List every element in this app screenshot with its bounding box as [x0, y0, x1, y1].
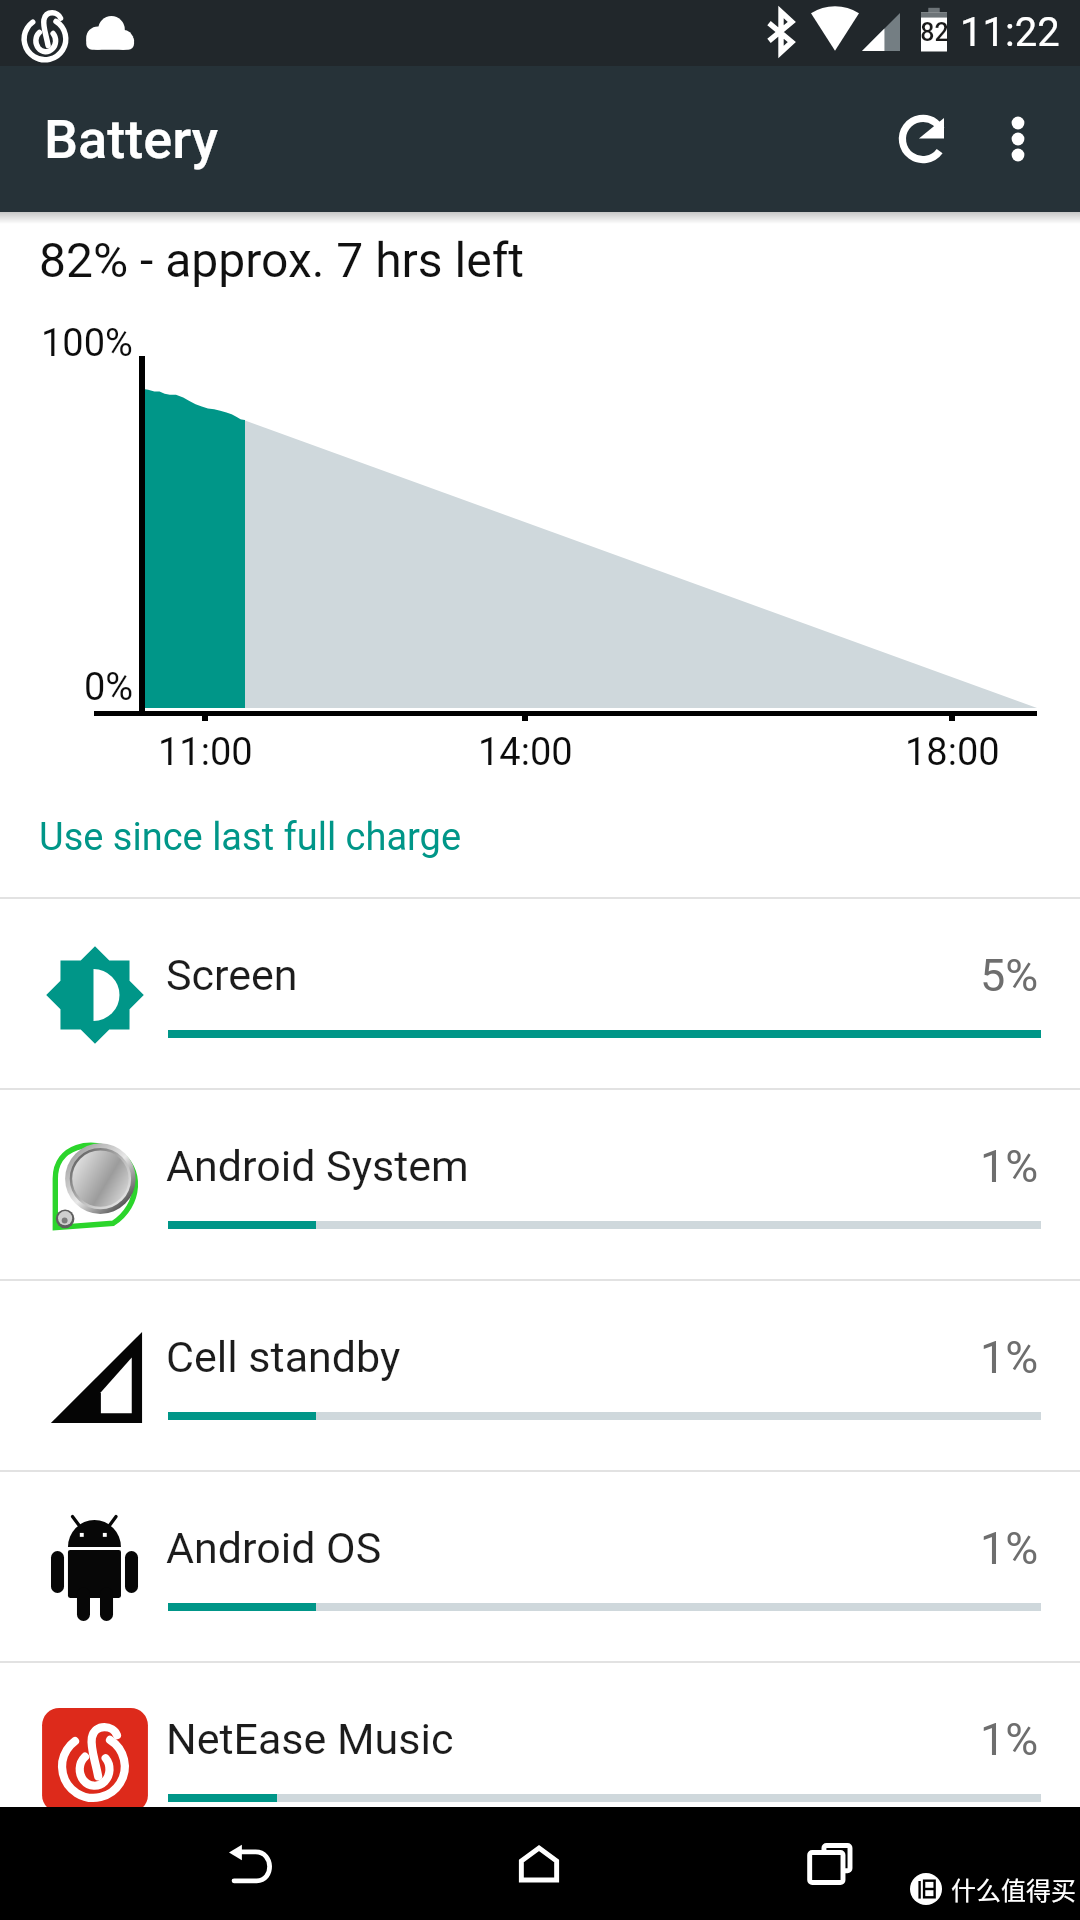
staticText: 1% — [980, 1331, 1039, 1384]
button[interactable]: Home — [484, 1807, 594, 1920]
button[interactable]: Use since last full charge — [39, 815, 462, 860]
staticText: Android System — [166, 1141, 469, 1191]
staticText: Cell standby — [166, 1332, 401, 1382]
staticText: 14:00 — [478, 730, 573, 775]
button[interactable]: Screen — [0, 899, 1080, 1090]
staticText: 11:22 — [960, 9, 1060, 56]
button[interactable]: More options — [962, 83, 1074, 195]
staticText: Android OS — [166, 1523, 382, 1573]
staticText: 0% — [84, 665, 134, 710]
button[interactable]: Refresh — [867, 83, 979, 195]
button[interactable]: Android System — [0, 1090, 1080, 1281]
staticText: 1% — [980, 1713, 1039, 1766]
staticText: Battery — [44, 108, 219, 171]
staticText: 1% — [980, 1522, 1039, 1575]
staticText: NetEase Music — [166, 1714, 454, 1764]
button[interactable]: Back — [195, 1807, 305, 1920]
button[interactable]: NetEase Music — [0, 1663, 1080, 1854]
staticText: 5% — [980, 949, 1039, 1002]
button[interactable]: Recent apps — [774, 1807, 884, 1920]
staticText: 82 — [919, 18, 950, 47]
staticText: 100% — [41, 321, 133, 366]
staticText: 11:00 — [158, 730, 253, 775]
staticText: Screen — [166, 950, 298, 1000]
staticText: 82% - approx. 7 hrs left — [39, 232, 525, 288]
staticText: 1% — [980, 1140, 1039, 1193]
button[interactable]: Cell standby — [0, 1281, 1080, 1472]
staticText: 18:00 — [905, 730, 1000, 775]
button[interactable]: Android OS — [0, 1472, 1080, 1663]
staticText: 什么值得买 — [951, 1871, 1077, 1907]
